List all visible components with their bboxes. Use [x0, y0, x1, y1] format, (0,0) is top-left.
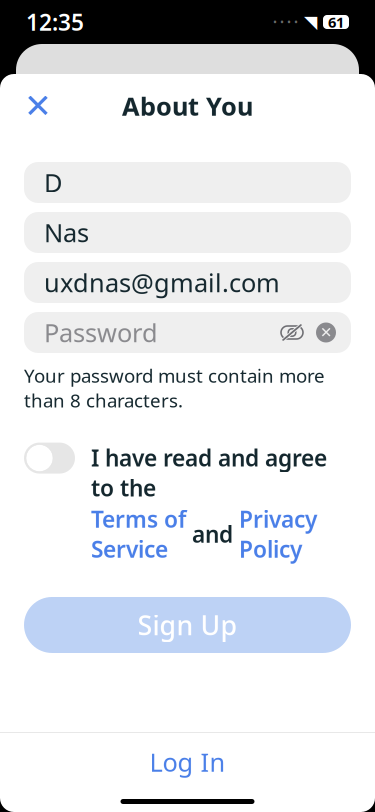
staticText: Privacy Policy: [239, 504, 317, 564]
button[interactable]: Clear password: [309, 315, 343, 349]
button[interactable]: Agree to terms: [24, 443, 75, 474]
staticText: 61: [328, 12, 344, 32]
button[interactable]: Sign Up: [0, 597, 375, 653]
staticText: • • • •: [273, 15, 298, 29]
staticText: I have read and agree to the: [91, 443, 327, 503]
button[interactable]: Log In: [0, 733, 375, 791]
staticText: Terms of Service: [91, 504, 186, 564]
staticText: Your password must contain more than 8 c…: [24, 363, 325, 413]
staticText: Log In: [149, 745, 225, 779]
staticText: Sign Up: [137, 607, 237, 643]
staticText: D: [44, 166, 62, 199]
staticText: ◥: [304, 12, 317, 32]
staticText: ✕: [320, 324, 332, 341]
button[interactable]: Privacy Policy: [239, 504, 317, 564]
button[interactable]: Close: [16, 84, 60, 128]
button[interactable]: Show password: [275, 315, 309, 349]
staticText: 12:35: [26, 7, 84, 37]
staticText: uxdnas@gmail.com: [44, 266, 280, 299]
staticText: Nas: [44, 216, 89, 249]
staticText: About You: [122, 89, 253, 123]
staticText: Password: [44, 316, 158, 349]
staticText: and: [186, 519, 239, 549]
staticText: ✕: [24, 87, 52, 125]
button[interactable]: Terms of Service: [91, 504, 186, 564]
